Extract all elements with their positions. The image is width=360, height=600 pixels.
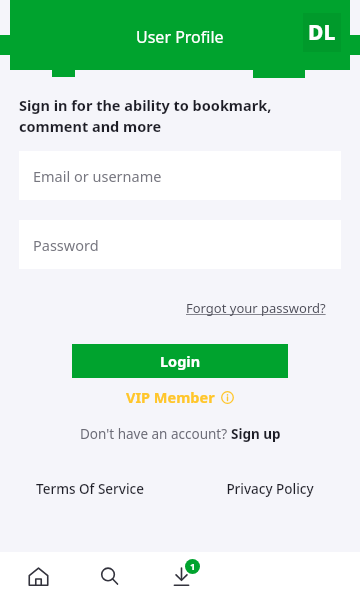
staticText: 1 — [190, 560, 196, 573]
staticText: VIP Member — [126, 387, 215, 407]
staticText: Don't have an account? — [80, 425, 231, 443]
staticText: Login — [160, 351, 201, 371]
staticText: Email or username — [33, 166, 162, 186]
staticText: Sign in for the ability to bookmark, com… — [19, 95, 272, 137]
button[interactable]: Search — [86, 552, 132, 600]
button[interactable]: Email or username — [19, 151, 341, 200]
staticText: Password — [33, 235, 99, 255]
button[interactable]: Forgot your password? — [182, 295, 330, 321]
button[interactable]: Downloads — [158, 552, 204, 600]
staticText: User Profile — [136, 26, 224, 48]
button[interactable]: Home — [15, 552, 61, 600]
button[interactable]: DL logo — [303, 13, 341, 52]
button[interactable]: Password — [19, 220, 341, 269]
button[interactable]: Privacy Policy — [222, 476, 318, 502]
staticText: DL — [308, 18, 336, 47]
button[interactable]: VIP Member — [0, 387, 360, 407]
button[interactable]: Sign up — [231, 425, 281, 443]
button[interactable]: Terms Of Service — [32, 476, 148, 502]
button[interactable]: Login — [72, 344, 288, 378]
